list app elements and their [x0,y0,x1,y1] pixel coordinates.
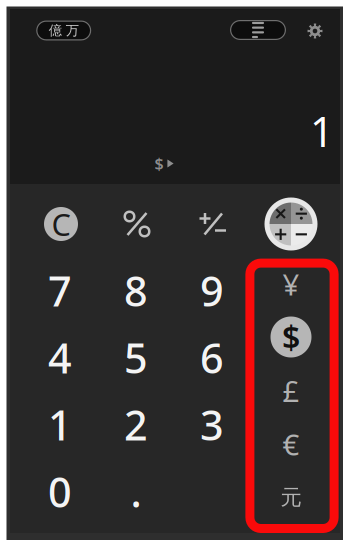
button[interactable]: 4 [22,324,98,391]
button[interactable]: € [246,417,336,470]
staticText: 8 [124,263,148,318]
button[interactable]: 3 [174,391,250,458]
button[interactable]: 8 [98,257,174,324]
button[interactable]: C [26,190,96,258]
button[interactable]: 5 [98,324,174,391]
button[interactable]: Sign [178,190,248,258]
staticText: 6 [200,330,224,385]
staticText: $ [282,316,300,358]
staticText: $ [154,153,163,174]
staticText: 2 [124,397,148,452]
staticText: ¥ [282,264,299,303]
staticText: 4 [48,330,72,385]
staticText: C [51,204,70,244]
button[interactable]: 2 [98,391,174,458]
button[interactable]: $ [246,310,336,363]
button[interactable]: ¥ [246,257,336,310]
staticText: 0 [48,464,72,519]
staticText: 元 [280,484,301,511]
staticText: € [282,424,299,463]
button[interactable]: 0 [22,458,98,525]
staticText: 5 [124,330,148,385]
button[interactable]: 元 [246,471,336,524]
staticText: £ [282,371,299,410]
staticText: . [130,464,141,519]
button[interactable]: Percent [102,190,172,258]
button[interactable]: 1 [22,391,98,458]
staticText: 億 万 [49,22,79,39]
button[interactable]: 7 [22,257,98,324]
button[interactable]: Operators [256,190,326,258]
button[interactable]: Tape [230,20,286,40]
staticText: 1 [48,397,72,452]
button[interactable]: 6 [174,324,250,391]
button[interactable]: 億 万 [36,20,91,40]
button[interactable]: . [98,458,174,525]
staticText: 1 [310,104,334,158]
staticText: 9 [200,263,224,318]
button[interactable]: Settings [302,18,328,44]
staticText: 7 [48,263,72,318]
staticText: 3 [200,397,224,452]
button[interactable]: £ [246,364,336,417]
button[interactable]: 9 [174,257,250,324]
